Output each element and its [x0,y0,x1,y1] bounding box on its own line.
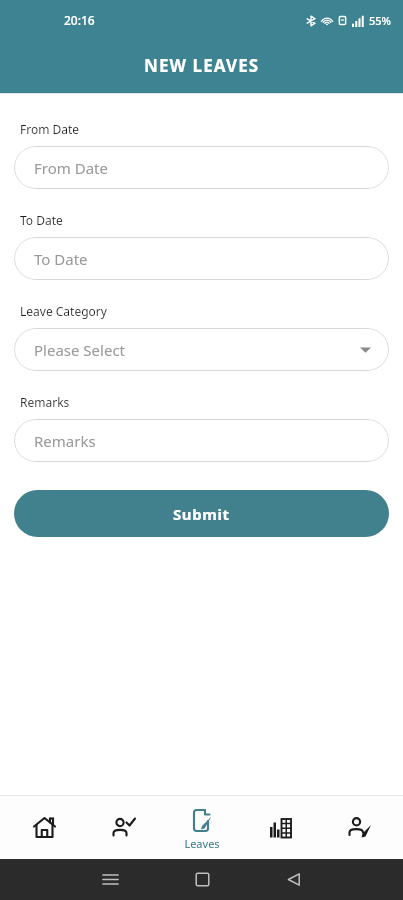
staticText: Leaves [184,836,220,851]
button[interactable]: From Date [14,146,389,189]
staticText: Leave Category [20,303,107,319]
staticText: 55% [369,13,391,28]
staticText: NEW LEAVES [144,54,260,77]
staticText: To Date [34,249,371,269]
button[interactable]: Profile [324,795,394,859]
button[interactable]: To Date [14,237,389,280]
staticText: Remarks [20,394,70,410]
button[interactable]: Remarks [14,419,389,462]
staticText: Submit [173,504,230,524]
staticText: From Date [20,121,80,137]
button[interactable]: Submit [14,490,389,537]
button[interactable]: Attendance [88,795,158,859]
button[interactable]: Home [9,795,79,859]
button[interactable]: Leaves [167,795,237,859]
staticText: Please Select [34,340,360,360]
button[interactable]: Please Select [14,328,389,371]
staticText: To Date [20,212,63,228]
staticText: Remarks [34,431,371,451]
button[interactable]: Reports [245,795,315,859]
staticText: 20:16 [64,12,95,28]
staticText: From Date [34,158,371,178]
